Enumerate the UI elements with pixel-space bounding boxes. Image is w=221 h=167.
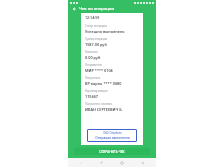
staticText: Сумма операции xyxy=(85,37,108,41)
staticText: Успешно выполнено xyxy=(85,29,125,34)
staticText: 115467 xyxy=(85,94,99,99)
staticText: 0.00 руб xyxy=(85,55,101,60)
button[interactable]: Back xyxy=(95,158,109,167)
staticText: Чек по операции xyxy=(79,6,115,12)
staticText: Отправитель xyxy=(85,63,102,67)
staticText: Комиссия xyxy=(85,50,98,54)
staticText: 12:14:59 xyxy=(85,15,100,20)
staticText: МИР **** 0104 xyxy=(85,68,113,73)
staticText: Статус операции xyxy=(85,24,107,28)
staticText: Код авторизации xyxy=(85,89,108,93)
staticText: ВР карты **** 0080 xyxy=(85,81,122,86)
staticText: ПАО Сбербанк xyxy=(103,131,122,135)
button[interactable]: Back xyxy=(71,6,77,12)
staticText: СОХРАНИТЬ ЧЕК xyxy=(99,150,125,154)
button[interactable]: Home xyxy=(115,158,129,167)
staticText: Получатель платежа xyxy=(85,102,112,106)
button[interactable]: Recents xyxy=(136,158,150,167)
staticText: ИВАН СЕРГЕЕВИЧ Б. xyxy=(85,107,123,112)
staticText: Получатель xyxy=(85,76,101,80)
staticText: Операция выполнена xyxy=(95,136,130,140)
staticText: 1587.00 руб xyxy=(85,42,107,47)
button[interactable]: СОХРАНИТЬ ЧЕК xyxy=(74,148,150,155)
